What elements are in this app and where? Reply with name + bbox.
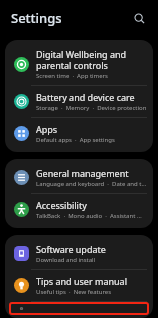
staticText: Language and keyboard · Date and time <box>36 180 147 188</box>
staticText: Software update <box>36 243 106 255</box>
button[interactable]: General management <box>5 162 153 193</box>
staticText: Settings <box>11 9 62 27</box>
button[interactable]: Apps <box>5 118 153 149</box>
button[interactable]: Software update <box>5 238 153 269</box>
staticText: Digital Wellbeing and parental controls <box>36 48 147 71</box>
button[interactable]: Accessibility <box>5 194 153 225</box>
button[interactable]: Search <box>128 7 150 29</box>
staticText: Default apps · App settings <box>36 136 115 144</box>
staticText: General management <box>36 167 129 179</box>
staticText: Apps <box>36 123 58 135</box>
staticText: Accessibility <box>36 199 87 211</box>
staticText: Tips and user manual <box>36 275 127 287</box>
staticText: TalkBack · Mono audio · Assistant menu <box>36 212 147 220</box>
button[interactable]: Tips and user manual <box>5 270 153 301</box>
staticText: Screen time · App timers <box>36 72 108 80</box>
staticText: Storage · Memory · Device protection <box>36 104 147 112</box>
button[interactable]: Digital Wellbeing and parental controls <box>5 43 153 85</box>
staticText: Download and install <box>36 256 96 264</box>
staticText: Useful tips · New features <box>36 288 112 296</box>
button[interactable]: About phone <box>9 302 149 315</box>
button[interactable]: Battery and device care <box>5 86 153 117</box>
staticText: Battery and device care <box>36 91 135 103</box>
